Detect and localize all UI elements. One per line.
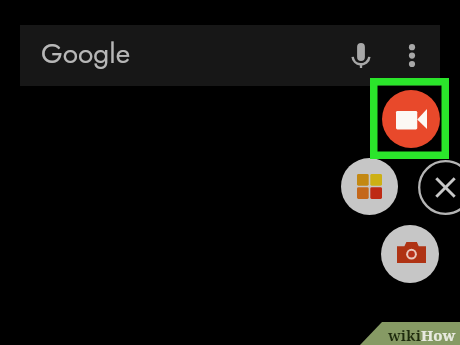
button[interactable]: Apps [341,158,398,215]
button[interactable]: More options [392,35,432,75]
staticText: wiki [388,325,421,345]
button[interactable]: Google [20,25,440,86]
button[interactable]: Close [418,160,460,215]
staticText: Google [41,33,131,73]
button[interactable]: Camera [381,225,439,283]
staticText: How [421,325,456,345]
button[interactable]: Record video [382,90,440,148]
button[interactable]: Search by voice [341,36,381,76]
